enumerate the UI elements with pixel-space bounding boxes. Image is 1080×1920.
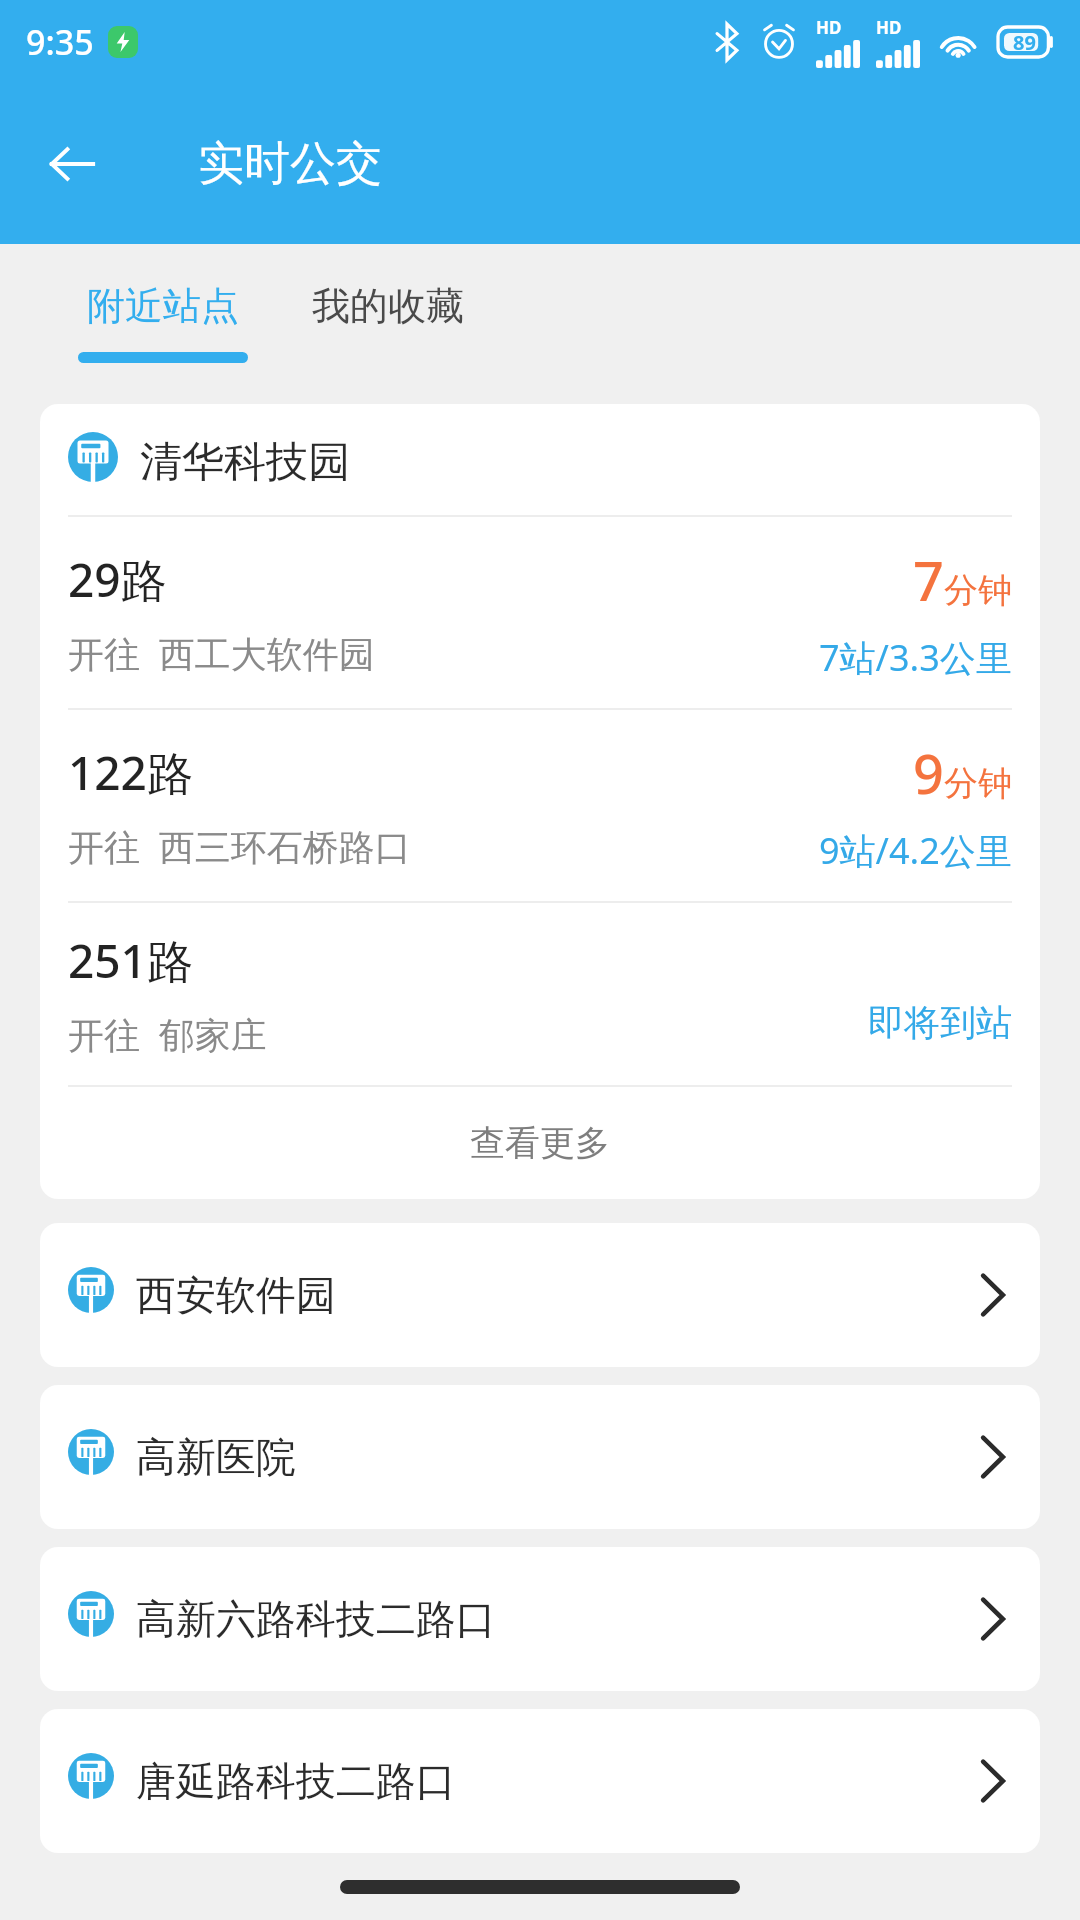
button[interactable]: 251路 bbox=[40, 903, 1040, 1085]
staticText: 西安软件园 bbox=[136, 1270, 980, 1320]
staticText: 即将到站 bbox=[868, 1000, 1012, 1045]
staticText: 查看更多 bbox=[470, 1121, 610, 1165]
staticText: 开往 郁家庄 bbox=[68, 1010, 267, 1059]
staticText: 分钟 bbox=[944, 569, 1012, 612]
button[interactable]: 附近站点 bbox=[85, 280, 241, 332]
staticText: 9 bbox=[913, 736, 944, 810]
button[interactable]: 返回 bbox=[36, 128, 108, 200]
staticText: 122路 bbox=[68, 741, 193, 804]
button[interactable]: 我的收藏 bbox=[310, 280, 466, 332]
button[interactable]: 查看更多 bbox=[40, 1087, 1040, 1199]
staticText: 唐延路科技二路口 bbox=[136, 1756, 980, 1806]
staticText: 清华科技园 bbox=[140, 436, 350, 489]
staticText: 89 bbox=[1013, 29, 1036, 56]
staticText: 我的收藏 bbox=[312, 282, 464, 330]
button[interactable]: 高新六路科技二路口 bbox=[40, 1547, 1040, 1691]
button[interactable]: 清华科技园 bbox=[40, 404, 1040, 515]
staticText: 开往 西三环石桥路口 bbox=[68, 822, 411, 871]
staticText: 分钟 bbox=[944, 762, 1012, 805]
staticText: 7 bbox=[913, 543, 944, 617]
staticText: 251路 bbox=[68, 929, 193, 992]
button[interactable]: 29路 bbox=[40, 517, 1040, 708]
staticText: 9站/4.2公里 bbox=[819, 826, 1012, 875]
button[interactable]: 西安软件园 bbox=[40, 1223, 1040, 1367]
staticText: 7站/3.3公里 bbox=[819, 633, 1012, 682]
staticText: HD bbox=[876, 16, 902, 39]
staticText: 附近站点 bbox=[87, 282, 239, 330]
staticText: 开往 西工大软件园 bbox=[68, 629, 375, 678]
staticText: 9:35 bbox=[26, 19, 94, 65]
staticText: 实时公交 bbox=[198, 135, 382, 193]
staticText: 29路 bbox=[68, 548, 167, 611]
button[interactable]: 122路 bbox=[40, 710, 1040, 901]
staticText: HD bbox=[816, 16, 842, 39]
staticText: 高新医院 bbox=[136, 1432, 980, 1482]
button[interactable]: 唐延路科技二路口 bbox=[40, 1709, 1040, 1853]
button[interactable]: 高新医院 bbox=[40, 1385, 1040, 1529]
staticText: 高新六路科技二路口 bbox=[136, 1594, 980, 1644]
